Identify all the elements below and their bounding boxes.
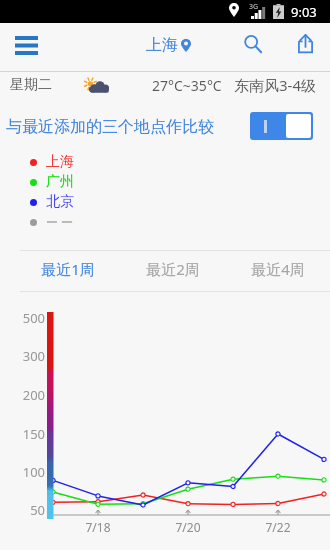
button[interactable]: Compare toggle (250, 112, 313, 140)
button[interactable]: Search (234, 25, 272, 63)
staticText: 北京 (46, 193, 74, 211)
staticText: 100 (14, 463, 45, 481)
button[interactable] (30, 212, 74, 232)
staticText: 3G (249, 2, 259, 12)
staticText: 9:03 (291, 3, 317, 21)
staticText: 最近1周 (41, 259, 95, 279)
staticText: 7/22 (260, 519, 296, 535)
staticText: 50 (14, 501, 45, 519)
button[interactable]: 最近2周 (128, 248, 218, 289)
staticText: 7/20 (170, 519, 206, 535)
button[interactable]: 上海 (146, 35, 191, 55)
staticText: 7/18 (80, 519, 116, 535)
staticText: 广州 (46, 173, 74, 191)
staticText: 500 (14, 309, 45, 327)
staticText: 最近2周 (146, 259, 200, 279)
staticText: 上海 (46, 153, 74, 171)
staticText: 星期二 (10, 76, 52, 94)
staticText: 与最近添加的三个地点作比较 (6, 117, 214, 137)
staticText: 上海 (146, 35, 178, 55)
staticText: 300 (14, 347, 45, 365)
staticText: 东南风3-4级 (234, 75, 316, 95)
button[interactable]: 最近1周 (23, 248, 113, 289)
staticText: 最近4周 (251, 259, 305, 279)
staticText: 27°C~35°C (152, 76, 222, 95)
button[interactable]: 广州 (30, 172, 74, 192)
staticText: 200 (14, 386, 45, 404)
button[interactable]: 上海 (30, 152, 74, 172)
button[interactable]: 最近4周 (233, 248, 323, 289)
button[interactable]: Share (286, 24, 324, 62)
button[interactable]: 北京 (30, 192, 74, 212)
button[interactable]: Menu (7, 26, 45, 64)
staticText: 150 (14, 425, 45, 443)
